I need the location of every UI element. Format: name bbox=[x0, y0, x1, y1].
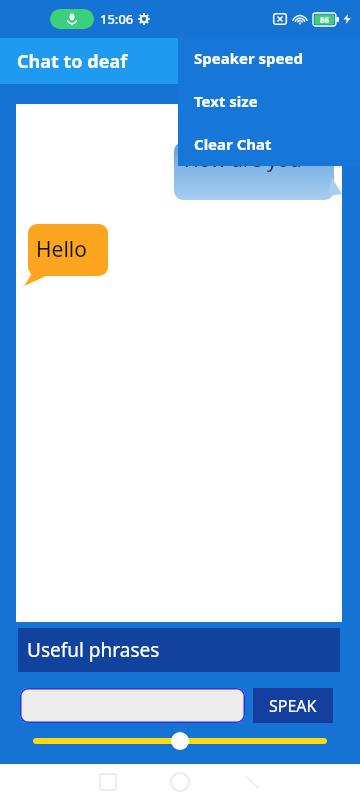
staticText: SPEAK bbox=[269, 695, 317, 717]
staticText: How are you bbox=[184, 146, 302, 173]
staticText: 15:06 bbox=[100, 10, 134, 28]
button[interactable]: Message input bbox=[20, 688, 245, 723]
staticText: 86 bbox=[320, 14, 330, 25]
staticText: Hello bbox=[36, 235, 87, 264]
button[interactable]: Home bbox=[144, 764, 216, 800]
button[interactable]: Speaker speed slider bbox=[33, 730, 327, 752]
staticText: Useful phrases bbox=[27, 637, 160, 663]
button[interactable]: Recent apps bbox=[72, 764, 144, 800]
staticText: Chat to deaf bbox=[17, 49, 128, 74]
button[interactable]: Chat to deaf bbox=[0, 38, 360, 84]
button[interactable]: Useful phrases bbox=[18, 628, 340, 672]
button[interactable]: Clear Chat bbox=[178, 122, 360, 165]
staticText: Speaker speed bbox=[194, 48, 303, 68]
staticText: Clear Chat bbox=[194, 134, 272, 154]
button[interactable]: SPEAK bbox=[253, 688, 333, 723]
staticText: Text size bbox=[194, 91, 258, 111]
button[interactable]: Speaker speed bbox=[178, 36, 360, 79]
button[interactable]: Text size bbox=[178, 79, 360, 122]
